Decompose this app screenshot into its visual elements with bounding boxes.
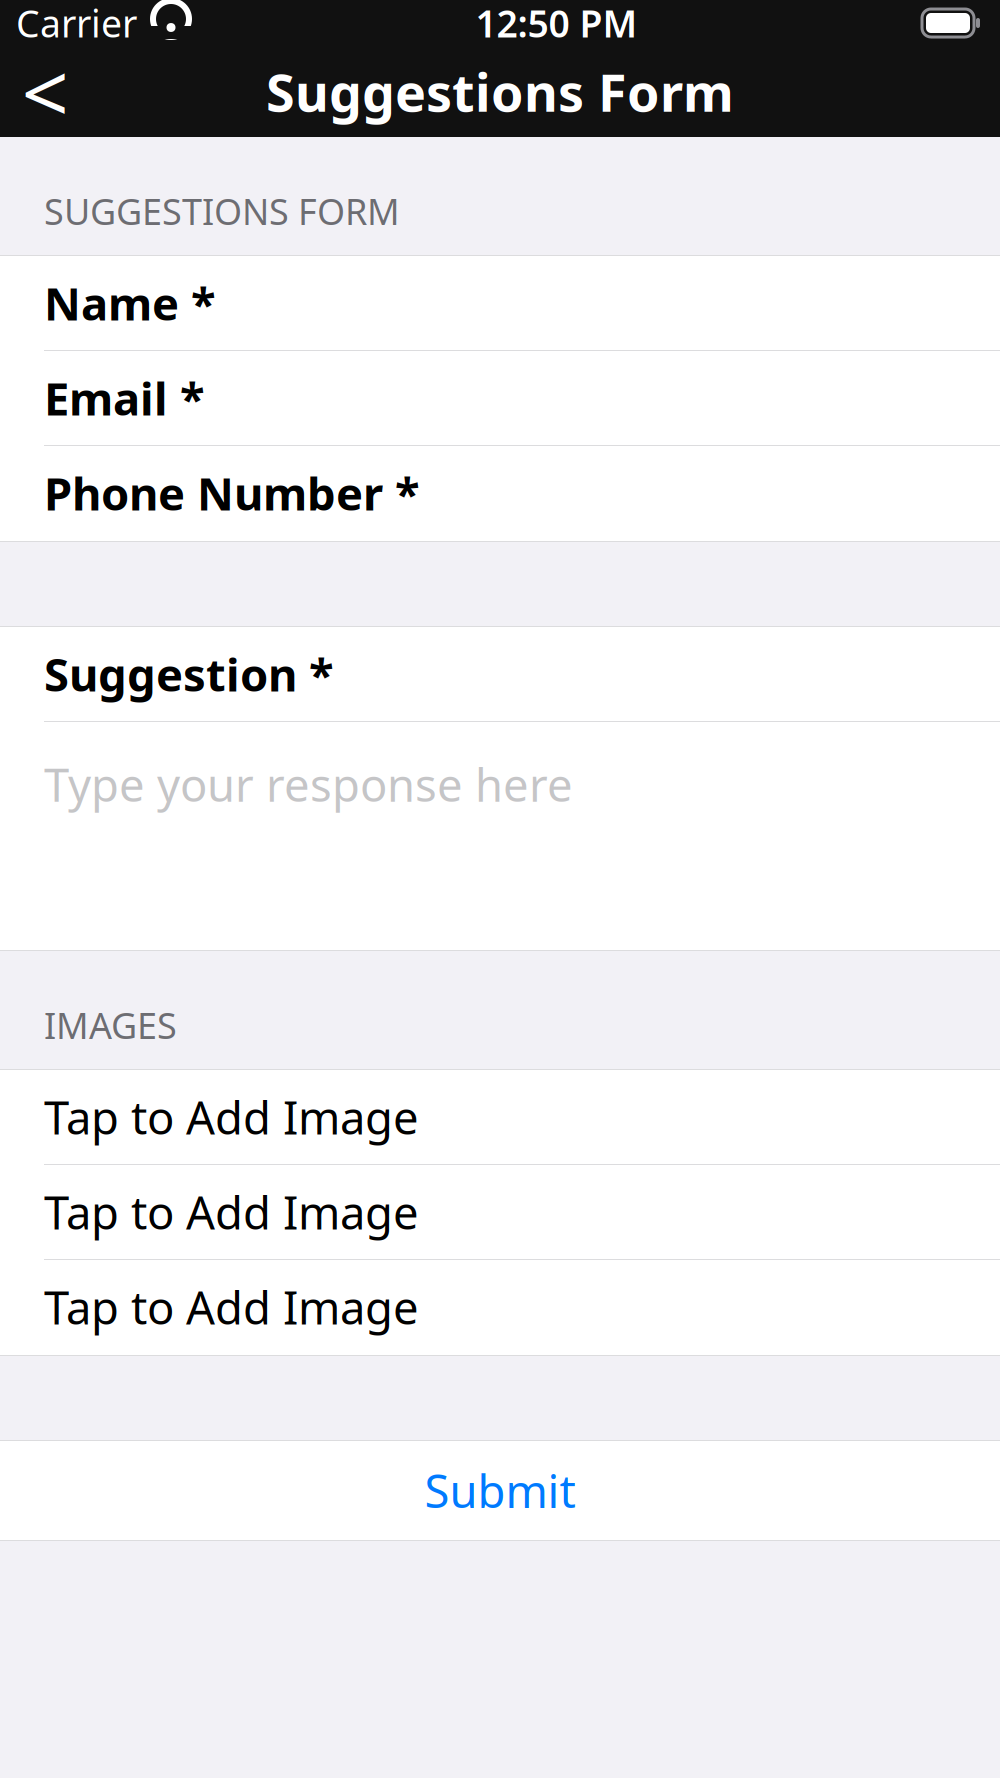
staticText: Type your response here [44, 754, 573, 814]
button[interactable]: Phone Number * [0, 446, 1000, 541]
button[interactable]: Submit [0, 1441, 1000, 1540]
button[interactable]: Tap to Add Image [0, 1070, 1000, 1165]
staticText: Email * [44, 368, 205, 428]
button[interactable]: Name * [0, 256, 1000, 351]
staticText: 12:50 PM [475, 0, 637, 48]
button[interactable]: Tap to Add Image [0, 1260, 1000, 1355]
button[interactable]: Type your response here [0, 722, 1000, 950]
staticText: Submit [424, 1460, 575, 1521]
staticText: IMAGES [44, 1001, 177, 1049]
staticText: Suggestion * [44, 644, 334, 704]
staticText: Tap to Add Image [44, 1277, 419, 1337]
staticText: Suggestions Form [266, 57, 734, 126]
staticText: Name * [44, 273, 216, 333]
staticText: < [21, 37, 68, 146]
button[interactable]: Tap to Add Image [0, 1165, 1000, 1260]
staticText: Carrier [16, 0, 137, 48]
staticText: Phone Number * [44, 463, 420, 523]
button[interactable]: Back [0, 46, 90, 137]
staticText: SUGGESTIONS FORM [44, 187, 400, 235]
staticText: Tap to Add Image [44, 1087, 419, 1147]
button[interactable]: Suggestion * [0, 627, 1000, 722]
button[interactable]: Email * [0, 351, 1000, 446]
staticText: Tap to Add Image [44, 1182, 419, 1242]
